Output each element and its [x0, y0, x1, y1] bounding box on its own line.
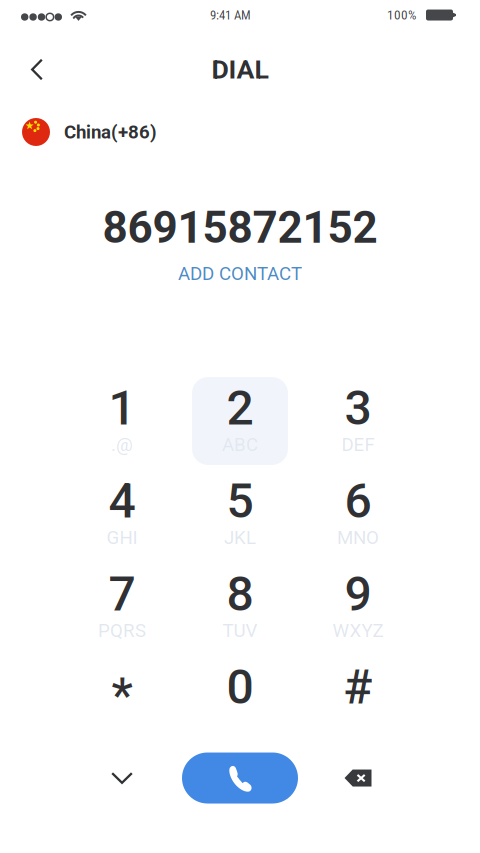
button[interactable]: 7 [74, 563, 170, 651]
button[interactable]: 3 [310, 377, 406, 465]
staticText: GHI [106, 527, 137, 548]
staticText: 6 [344, 473, 371, 529]
staticText: PQRS [98, 620, 146, 641]
button[interactable]: Call [192, 747, 288, 809]
staticText: TUV [222, 620, 257, 641]
staticText: 1 [108, 380, 135, 436]
staticText: MNO [337, 527, 379, 548]
button[interactable]: Back [15, 39, 59, 95]
staticText: DEF [341, 434, 374, 455]
button[interactable]: China(+86) [22, 111, 157, 153]
staticText: 5 [226, 473, 253, 529]
button[interactable]: # [310, 656, 406, 744]
button[interactable]: 4 [74, 470, 170, 558]
button[interactable]: ADD CONTACT [168, 258, 312, 289]
button[interactable]: 8 [192, 563, 288, 651]
staticText: WXYZ [332, 620, 383, 641]
staticText: 4 [108, 473, 135, 529]
button[interactable]: 6 [310, 470, 406, 558]
button[interactable]: * [74, 656, 170, 744]
button[interactable]: 5 [192, 470, 288, 558]
button[interactable]: Hide keypad [74, 747, 170, 809]
staticText: # [343, 659, 372, 715]
staticText: 86915872152 [102, 202, 377, 254]
staticText: DIAL [211, 54, 268, 85]
staticText: ABC [222, 434, 258, 455]
staticText: 8 [226, 566, 253, 622]
staticText: 100% [387, 7, 416, 23]
staticText: 0 [226, 659, 253, 715]
staticText: China(+86) [64, 121, 157, 143]
staticText: .@ [111, 434, 133, 455]
button[interactable]: 1 [74, 377, 170, 465]
button[interactable]: 2 [192, 377, 288, 465]
button[interactable]: Delete [310, 747, 406, 809]
button[interactable]: 9 [310, 563, 406, 651]
staticText: 7 [108, 566, 135, 622]
button[interactable]: 0 [192, 656, 288, 744]
staticText: * [111, 667, 132, 723]
staticText: JKL [224, 527, 256, 548]
staticText: 9:41 AM [210, 7, 251, 22]
staticText: 3 [344, 380, 371, 436]
staticText: 9 [344, 566, 371, 622]
staticText: 2 [226, 380, 253, 436]
staticText: ADD CONTACT [178, 263, 302, 284]
